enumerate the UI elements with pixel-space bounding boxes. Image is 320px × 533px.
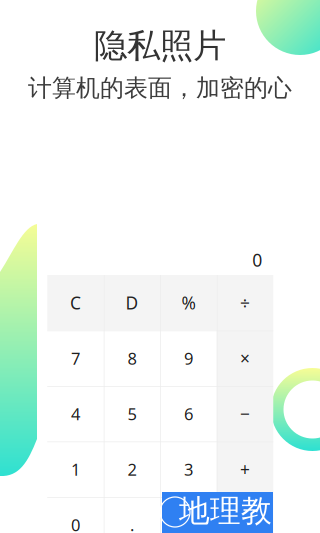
staticText: 计算机的表面，加密的心: [28, 73, 292, 103]
staticText: ÷: [240, 291, 250, 314]
staticText: +: [240, 457, 250, 481]
staticText: 6: [184, 402, 193, 425]
staticText: 8: [127, 347, 136, 369]
button[interactable]: 7: [47, 330, 104, 386]
staticText: 5: [127, 402, 136, 425]
button[interactable]: 0: [47, 497, 104, 533]
staticText: 地理教: [179, 492, 272, 530]
button[interactable]: ÷: [217, 275, 273, 330]
button[interactable]: .: [104, 497, 160, 533]
button[interactable]: +: [217, 441, 273, 497]
button[interactable]: =: [217, 497, 273, 533]
staticText: 4: [71, 402, 80, 425]
button[interactable]: ×: [217, 330, 273, 386]
staticText: 7: [71, 347, 80, 369]
button[interactable]: [160, 497, 217, 533]
staticText: 9: [184, 347, 193, 369]
staticText: 3: [184, 458, 193, 480]
staticText: ×: [240, 346, 250, 370]
button[interactable]: C: [47, 275, 104, 330]
button[interactable]: 5: [104, 386, 160, 441]
staticText: 0: [71, 513, 80, 533]
button[interactable]: −: [217, 386, 273, 441]
staticText: 1: [71, 458, 80, 480]
staticText: 2: [127, 458, 136, 480]
button[interactable]: D: [104, 275, 160, 330]
staticText: 0: [252, 248, 262, 272]
staticText: D: [125, 291, 138, 314]
button[interactable]: %: [160, 275, 217, 330]
staticText: 隐私照片: [94, 25, 226, 67]
staticText: %: [181, 291, 195, 314]
button[interactable]: 8: [104, 330, 160, 386]
staticText: .: [130, 513, 134, 533]
staticText: C: [70, 291, 81, 314]
button[interactable]: 6: [160, 386, 217, 441]
staticText: −: [240, 402, 250, 425]
button[interactable]: 1: [47, 441, 104, 497]
button[interactable]: 3: [160, 441, 217, 497]
staticText: =: [240, 513, 250, 533]
button[interactable]: 2: [104, 441, 160, 497]
button[interactable]: 4: [47, 386, 104, 441]
button[interactable]: 9: [160, 330, 217, 386]
